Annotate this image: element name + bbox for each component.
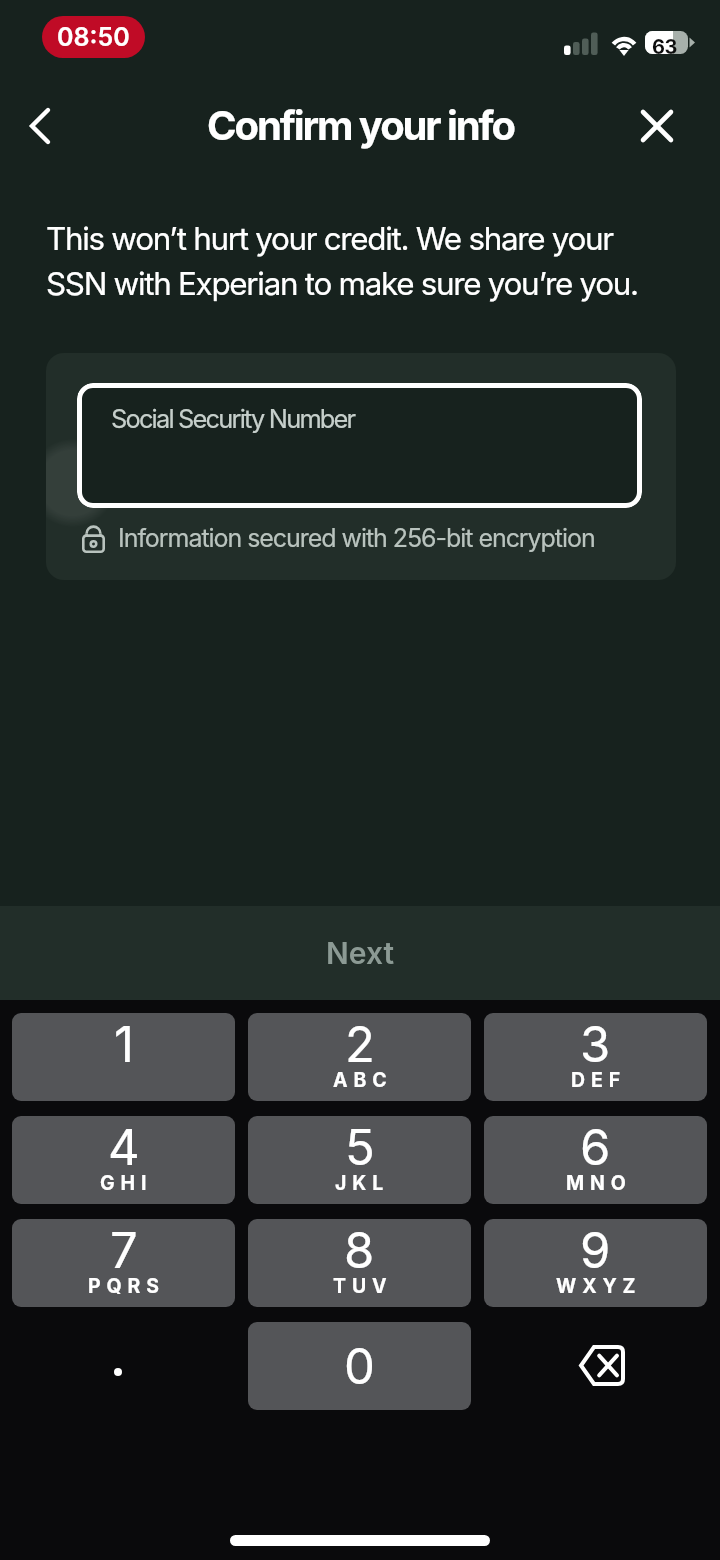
staticText: Confirm your info (207, 101, 514, 149)
button[interactable]: 5 (248, 1116, 471, 1204)
staticText: Next (326, 935, 395, 971)
staticText: 63 (652, 35, 677, 59)
staticText: 0 (344, 1337, 375, 1396)
staticText: TUV (333, 1274, 393, 1298)
button[interactable]: Decimal point (12, 1322, 235, 1410)
button[interactable]: 1 (12, 1013, 235, 1101)
button[interactable]: 0 (248, 1322, 471, 1410)
button[interactable]: 4 (12, 1116, 235, 1204)
staticText: DEF (571, 1068, 627, 1092)
staticText: 7 (110, 1221, 138, 1280)
button[interactable]: Back (10, 96, 70, 156)
button[interactable]: Close (627, 96, 687, 156)
staticText: WXYZ (556, 1274, 642, 1298)
staticText: JKL (335, 1171, 390, 1195)
button[interactable]: 2 (248, 1013, 471, 1101)
staticText: 5 (345, 1118, 375, 1177)
button[interactable]: Backspace (484, 1322, 707, 1410)
staticText: 6 (580, 1118, 611, 1177)
button[interactable]: 6 (484, 1116, 707, 1204)
button[interactable]: 9 (484, 1219, 707, 1307)
staticText: 2 (345, 1015, 375, 1074)
staticText: 1 (114, 1015, 134, 1074)
staticText: PQRS (88, 1274, 165, 1298)
button[interactable]: Next (0, 906, 720, 1000)
button[interactable]: 8 (248, 1219, 471, 1307)
button[interactable]: Social Security Number (77, 383, 642, 508)
staticText: Information secured with 256-bit encrypt… (118, 523, 595, 553)
button[interactable]: 7 (12, 1219, 235, 1307)
staticText: 3 (580, 1015, 611, 1074)
staticText: 4 (108, 1118, 140, 1177)
staticText: 9 (580, 1221, 611, 1280)
staticText: 8 (344, 1221, 375, 1280)
staticText: ABC (333, 1068, 393, 1092)
staticText: Social Security Number (111, 403, 355, 434)
button[interactable]: 3 (484, 1013, 707, 1101)
staticText: MNO (566, 1171, 632, 1195)
staticText: 08:50 (57, 22, 130, 52)
staticText: This won’t hurt your credit. We share yo… (46, 220, 671, 303)
staticText: GHI (100, 1171, 153, 1195)
